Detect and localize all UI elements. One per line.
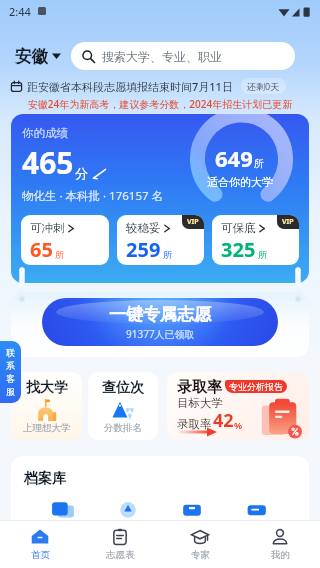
button[interactable]: 找大学 [11, 372, 82, 440]
staticText: 一键专属志愿 [109, 304, 211, 325]
button[interactable]: 还剩0天 [241, 78, 286, 94]
button[interactable]: 录取率 [167, 372, 309, 440]
staticText: 档案库 [24, 470, 66, 488]
button[interactable]: 志愿表 [80, 521, 160, 568]
staticText: 还剩0天 [247, 80, 280, 92]
staticText: 2:44 [9, 4, 31, 19]
staticText: 搜索大学、专业、职业 [102, 49, 222, 64]
staticText: 你的成绩 [22, 126, 68, 140]
staticText: 所 [254, 157, 264, 170]
staticText: 目标大学 [177, 396, 223, 410]
button[interactable]: 可冲刺 [21, 215, 109, 265]
staticText: 上理想大学 [23, 422, 71, 434]
staticText: 分 [75, 165, 88, 181]
button[interactable]: 安徽 [15, 42, 61, 70]
button[interactable]: 可保底 [212, 215, 299, 265]
staticText: 465 [22, 142, 74, 183]
staticText: 首页 [31, 549, 50, 561]
staticText: 专业分析报告 [229, 381, 283, 392]
staticText: 可冲刺 [30, 221, 65, 235]
staticText: 录取率 [177, 378, 222, 397]
staticText: 安徽 [15, 46, 48, 66]
staticText: 42 [213, 408, 234, 433]
staticText: 分数排名 [104, 422, 142, 434]
staticText: 所 [258, 249, 267, 260]
staticText: 查位次 [102, 379, 144, 397]
staticText: 物化生 · 本科批 · 176157 名 [22, 188, 164, 204]
staticText: 我的 [271, 549, 290, 561]
staticText: 专家 [191, 549, 210, 561]
staticText: 联 系 客 服 [6, 347, 15, 398]
staticText: 找大学 [26, 379, 68, 397]
button[interactable]: 较稳妥 [117, 215, 204, 265]
staticText: 325 [221, 236, 256, 263]
staticText: 适合你的大学 [207, 175, 273, 189]
button[interactable]: 专家 [160, 521, 240, 568]
button[interactable]: 首页 [0, 521, 80, 568]
staticText: 录取率 [177, 417, 212, 431]
staticText: 259 [126, 236, 161, 263]
staticText: VIP [187, 217, 199, 227]
staticText: 距安徽省本科段志愿填报结束时间7月11日 [27, 79, 233, 94]
button[interactable]: 一键专属志愿 [42, 298, 278, 346]
staticText: 安徽24年为新高考，建议参考分数，2024年招生计划已更新 [0, 97, 320, 111]
staticText: 较稳妥 [126, 221, 161, 235]
button[interactable]: 搜索大学、专业、职业 [71, 42, 295, 70]
staticText: % [234, 419, 243, 431]
staticText: 649 [215, 143, 253, 173]
staticText: 志愿表 [106, 549, 135, 561]
staticText: 可保底 [221, 221, 256, 235]
staticText: 所 [163, 249, 172, 260]
staticText: VIP [282, 217, 294, 227]
button[interactable]: 联系客服 [0, 341, 21, 403]
button[interactable]: 我的 [240, 521, 320, 568]
staticText: 91377人已领取 [126, 327, 195, 341]
staticText: 65 [30, 236, 53, 263]
button[interactable]: 查位次 [88, 372, 158, 440]
staticText: 所 [55, 249, 64, 260]
